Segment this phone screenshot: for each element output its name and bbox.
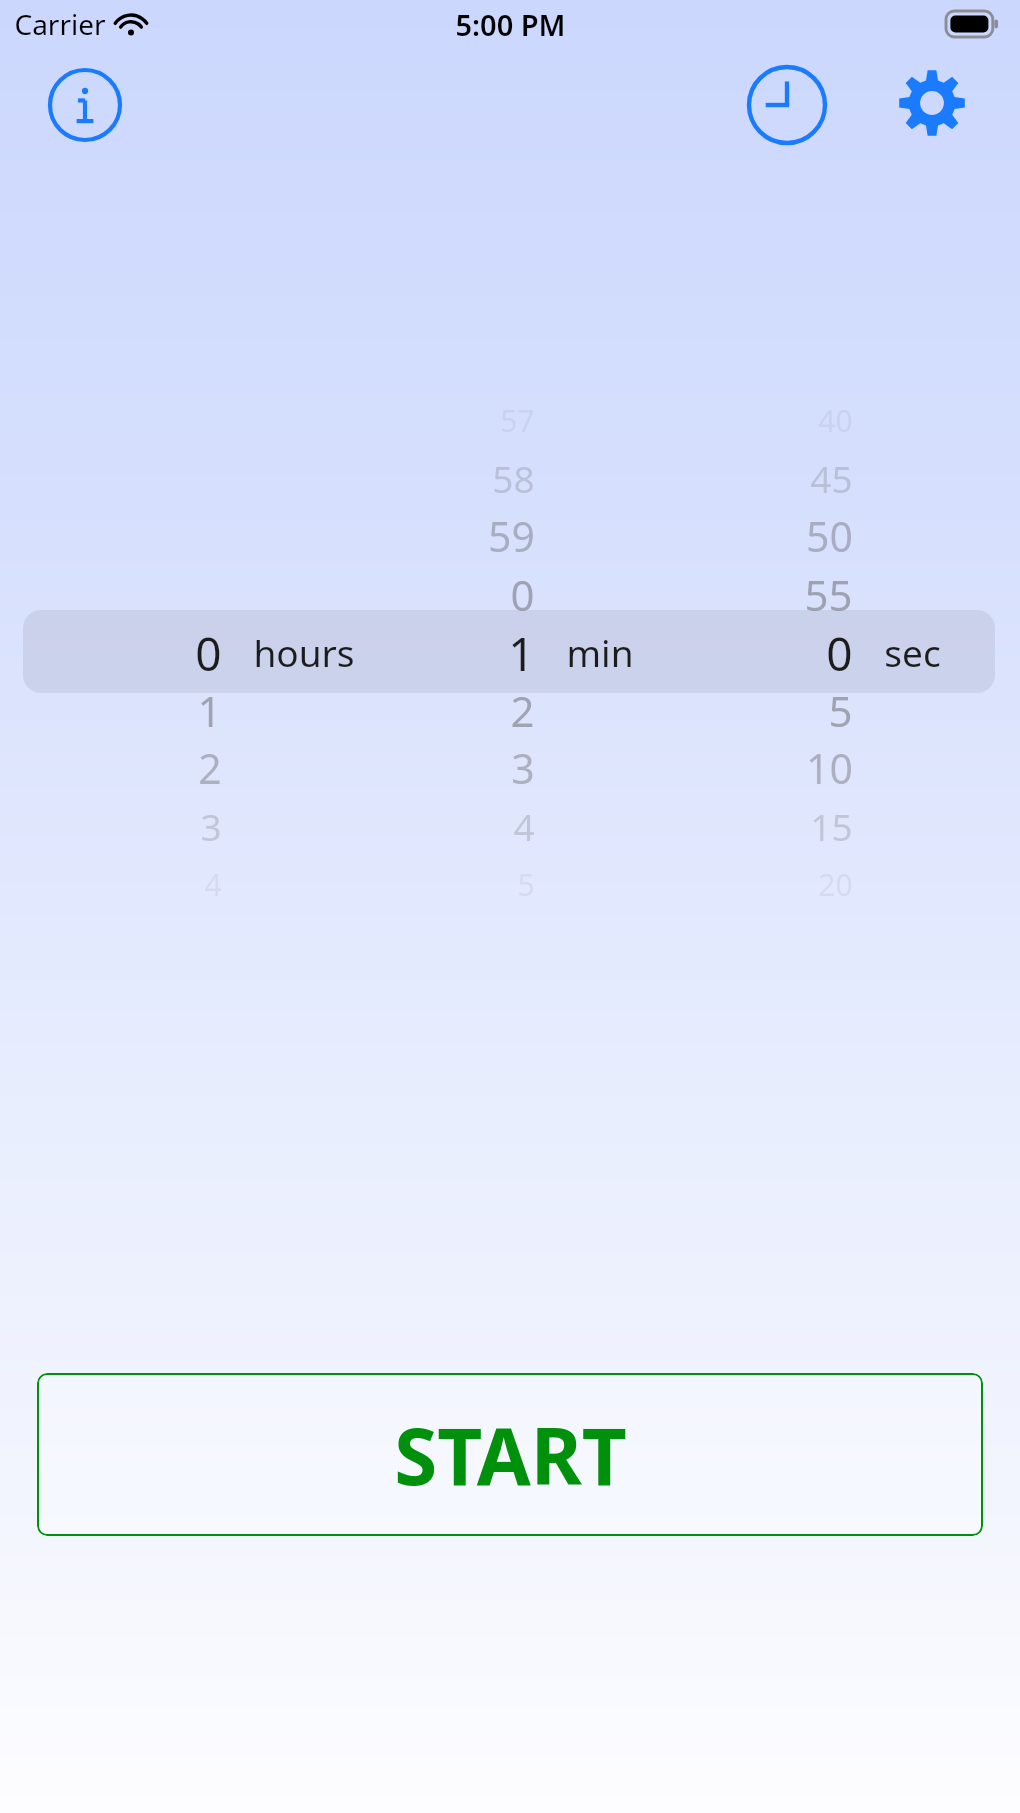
- staticText: 4: [204, 864, 222, 905]
- button[interactable]: START: [37, 1373, 983, 1536]
- staticText: hours: [253, 627, 355, 677]
- staticText: 10: [806, 740, 853, 796]
- staticText: min: [566, 627, 634, 677]
- staticText: START: [394, 1402, 627, 1508]
- staticText: 4: [513, 801, 535, 851]
- button[interactable]: Info: [47, 67, 123, 143]
- staticText: 0: [510, 566, 535, 622]
- staticText: sec: [884, 627, 941, 677]
- staticText: 5:00 PM: [455, 5, 566, 44]
- staticText: 5: [517, 864, 535, 905]
- staticText: 58: [492, 453, 535, 503]
- button[interactable]: Settings: [896, 67, 968, 139]
- staticText: 1: [197, 682, 222, 738]
- staticText: 40: [818, 400, 853, 441]
- staticText: 50: [806, 508, 853, 564]
- staticText: Carrier: [14, 5, 106, 43]
- staticText: 3: [511, 740, 535, 796]
- staticText: 59: [488, 508, 535, 564]
- button[interactable]: 1: [385, 622, 535, 682]
- staticText: 1: [508, 622, 535, 682]
- staticText: 55: [804, 566, 853, 622]
- staticText: 0: [195, 622, 222, 682]
- button[interactable]: 0: [703, 622, 853, 682]
- staticText: 2: [198, 740, 222, 796]
- staticText: 3: [200, 801, 222, 851]
- staticText: 20: [818, 864, 853, 905]
- staticText: 45: [810, 453, 853, 503]
- staticText: 0: [826, 622, 853, 682]
- staticText: 2: [510, 682, 535, 738]
- button[interactable]: 0: [72, 622, 222, 682]
- button[interactable]: History: [745, 63, 829, 147]
- staticText: 5: [828, 682, 853, 738]
- staticText: 57: [500, 400, 535, 441]
- staticText: 15: [810, 801, 853, 851]
